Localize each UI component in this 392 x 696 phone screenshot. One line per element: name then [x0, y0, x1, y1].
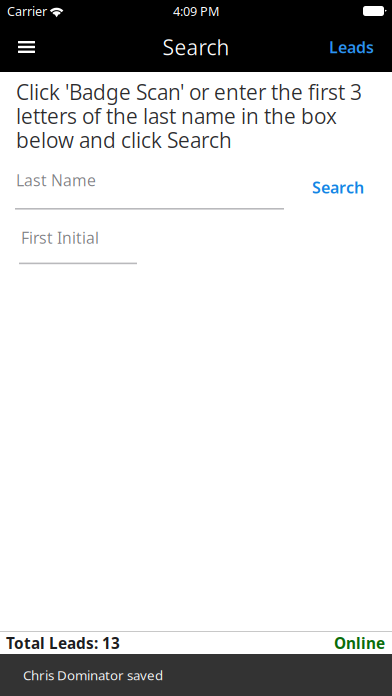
staticText: Carrier	[7, 2, 47, 20]
staticText: Search	[312, 176, 364, 198]
button[interactable]: Leads	[312, 22, 374, 72]
staticText: Total Leads: 13	[6, 633, 120, 653]
button[interactable]: First Initial	[19, 227, 137, 264]
staticText: Last Name	[16, 169, 96, 191]
staticText: Click 'Badge Scan' or enter the first 3	[16, 78, 362, 106]
staticText: Chris Dominator saved	[23, 666, 163, 684]
staticText: Leads	[329, 36, 374, 58]
button[interactable]: Last Name	[15, 165, 284, 210]
button[interactable]: Search	[308, 165, 364, 209]
button[interactable]: Menu	[0, 22, 53, 72]
staticText: 4:09 PM	[173, 2, 219, 20]
staticText: Online	[334, 633, 385, 653]
staticText: below and click Search	[16, 126, 232, 154]
staticText: letters of the last name in the box	[16, 102, 337, 130]
staticText: First Initial	[21, 227, 99, 248]
staticText: Search	[162, 33, 229, 61]
